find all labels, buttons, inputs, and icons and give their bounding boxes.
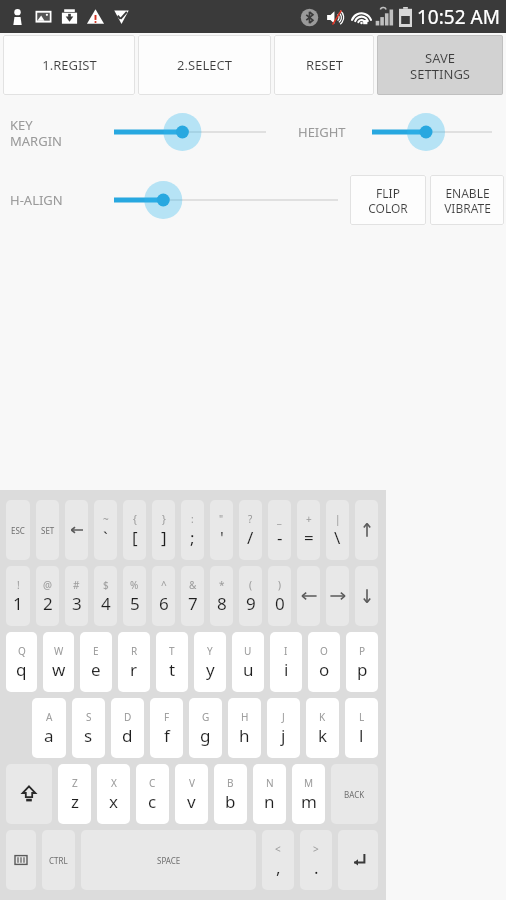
button[interactable]: Z	[58, 764, 91, 824]
button[interactable]: 2.SELECT	[138, 35, 271, 95]
button[interactable]: H	[228, 698, 261, 758]
button[interactable]: W	[43, 632, 74, 692]
button[interactable]: ^	[152, 566, 175, 626]
button[interactable]: ~	[94, 500, 117, 560]
button[interactable]: {	[123, 500, 146, 560]
staticText: J	[282, 710, 285, 724]
button[interactable]: (	[239, 566, 262, 626]
staticText: h	[239, 724, 250, 747]
staticText: !	[17, 578, 20, 592]
staticText: K	[319, 710, 326, 724]
button[interactable]: *	[210, 566, 233, 626]
button[interactable]: }	[152, 500, 175, 560]
button[interactable]: SET	[36, 500, 59, 560]
button[interactable]: )	[268, 566, 291, 626]
button[interactable]: T	[156, 632, 188, 692]
button[interactable]: shift	[6, 764, 52, 824]
button[interactable]: @	[36, 566, 59, 626]
button[interactable]: SAVE SETTINGS	[377, 35, 503, 95]
button[interactable]	[368, 109, 496, 155]
button[interactable]: S	[72, 698, 105, 758]
staticText: ?	[248, 512, 253, 526]
button[interactable]: arrowright	[326, 566, 349, 626]
button[interactable]: enter	[338, 830, 378, 890]
button[interactable]: L	[345, 698, 378, 758]
button[interactable]: D	[111, 698, 144, 758]
button[interactable]: "	[210, 500, 233, 560]
button[interactable]: arrowleft	[297, 566, 320, 626]
staticText: +	[306, 512, 312, 526]
staticText: q	[16, 658, 27, 681]
button[interactable]: A	[32, 698, 66, 758]
button[interactable]: ESC	[6, 500, 30, 560]
staticText: 8	[217, 592, 227, 615]
staticText: SAVE SETTINGS	[410, 49, 470, 82]
button[interactable]: B	[214, 764, 247, 824]
button[interactable]: Y	[194, 632, 226, 692]
button[interactable]: +	[297, 500, 320, 560]
button[interactable]: J	[267, 698, 300, 758]
button[interactable]: G	[189, 698, 222, 758]
staticText: ;	[190, 526, 195, 549]
staticText: i	[284, 658, 289, 681]
button[interactable]: ENABLE VIBRATE	[430, 175, 504, 225]
button[interactable]: !	[6, 566, 30, 626]
staticText: $	[103, 578, 109, 592]
button[interactable]: R	[118, 632, 150, 692]
staticText: >	[313, 842, 319, 856]
button[interactable]: N	[253, 764, 286, 824]
button[interactable]: V	[175, 764, 208, 824]
button[interactable]: RESET	[274, 35, 374, 95]
button[interactable]: >	[300, 830, 332, 890]
button[interactable]: |	[326, 500, 349, 560]
button[interactable]: ?	[239, 500, 262, 560]
staticText: '	[220, 526, 224, 549]
button[interactable]: kb	[6, 830, 36, 890]
button[interactable]	[110, 109, 270, 155]
button[interactable]: down	[355, 566, 378, 626]
staticText: ~	[103, 512, 109, 526]
button[interactable]: P	[346, 632, 378, 692]
button[interactable]: CTRL	[42, 830, 75, 890]
button[interactable]: E	[80, 632, 112, 692]
button[interactable]: F	[150, 698, 183, 758]
button[interactable]: 1.REGIST	[3, 35, 135, 95]
button[interactable]: &	[181, 566, 204, 626]
button[interactable]: :	[181, 500, 204, 560]
staticText: 2.SELECT	[177, 56, 232, 74]
staticText: [	[132, 526, 138, 549]
staticText: 2	[43, 592, 53, 615]
button[interactable]: up	[355, 500, 378, 560]
staticText: y	[206, 658, 215, 681]
button[interactable]: O	[308, 632, 340, 692]
button[interactable]: I	[270, 632, 302, 692]
staticText: @	[43, 578, 52, 592]
button[interactable]: %	[123, 566, 146, 626]
button[interactable]: SPACE	[81, 830, 256, 890]
staticText: |	[335, 512, 341, 526]
button[interactable]: FLIP COLOR	[350, 175, 426, 225]
button[interactable]: BACK	[331, 764, 378, 824]
button[interactable]: X	[97, 764, 130, 824]
button[interactable]: M	[292, 764, 325, 824]
staticText: W	[54, 644, 64, 658]
button[interactable]: Q	[6, 632, 37, 692]
staticText: }	[162, 512, 166, 526]
button[interactable]: U	[232, 632, 264, 692]
staticText: ]	[161, 526, 167, 549]
staticText: ^	[161, 578, 167, 592]
staticText: 10:52 AM	[417, 4, 500, 30]
staticText: R	[131, 644, 138, 658]
staticText: H	[241, 710, 249, 724]
staticText: D	[124, 710, 132, 724]
button[interactable]: #	[65, 566, 88, 626]
button[interactable]	[110, 177, 342, 223]
button[interactable]: _	[268, 500, 291, 560]
staticText: 7	[188, 592, 198, 615]
button[interactable]: <	[262, 830, 294, 890]
button[interactable]: C	[136, 764, 169, 824]
staticText: X	[111, 776, 117, 790]
button[interactable]: left	[65, 500, 88, 560]
button[interactable]: K	[306, 698, 339, 758]
button[interactable]: $	[94, 566, 117, 626]
